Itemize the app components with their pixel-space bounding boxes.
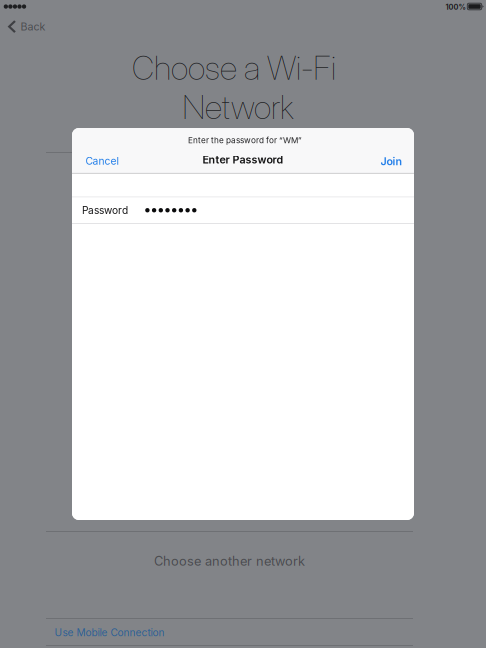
button[interactable]: Use Mobile Connection	[46, 619, 413, 646]
staticText: Network	[182, 87, 294, 127]
staticText: Use Mobile Connection	[54, 626, 164, 639]
staticText: Password	[82, 204, 128, 216]
staticText: Enter the password for “WM”	[188, 135, 302, 145]
staticText: Back	[21, 20, 46, 33]
staticText: Enter Password	[202, 153, 283, 166]
button[interactable]: Cancel	[72, 149, 132, 173]
button[interactable]: Back	[0, 15, 54, 38]
staticText: Choose a Wi-Fi	[132, 48, 336, 88]
button[interactable]: Password	[72, 197, 414, 223]
staticText: Choose another network	[154, 553, 305, 569]
button[interactable]: Join	[72, 149, 414, 174]
staticText: 100%	[445, 3, 465, 12]
staticText: Cancel	[85, 155, 118, 167]
staticText: Join	[380, 155, 402, 168]
